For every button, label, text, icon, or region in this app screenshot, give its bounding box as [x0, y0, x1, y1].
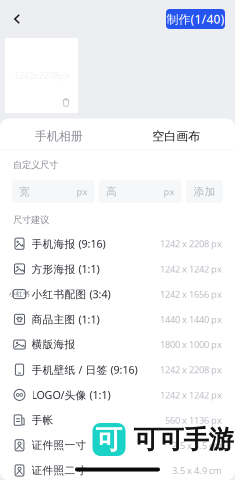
staticText: 商品主图 (1:1)	[31, 312, 99, 326]
staticText: px	[76, 185, 87, 198]
button[interactable]: 方形海报 (1:1)	[0, 256, 235, 281]
button[interactable]: LOGO/头像 (1:1)	[0, 382, 235, 407]
staticText: 1242x2208px	[13, 69, 69, 82]
button[interactable]: Back	[0, 7, 29, 31]
staticText: 手机海报 (9:16)	[31, 237, 105, 251]
staticText: px	[163, 185, 174, 198]
button[interactable]: 制作(1/40)	[166, 9, 225, 29]
staticText: 尺寸建议	[13, 214, 49, 226]
button[interactable]: 证件照二寸	[0, 458, 235, 480]
button[interactable]: 商品主图 (1:1)	[0, 307, 235, 332]
staticText: 自定义尺寸	[13, 159, 58, 171]
staticText: 空白画布	[152, 129, 200, 144]
staticText: 手帐	[31, 413, 53, 427]
staticText: 添加	[193, 185, 215, 198]
staticText: 横版海报	[31, 338, 75, 351]
button[interactable]: 手机相册	[0, 118, 117, 149]
button[interactable]: 添加	[186, 180, 223, 203]
button[interactable]: 空白画布	[117, 118, 235, 149]
staticText: 1242 x 1242 px	[160, 263, 222, 275]
button[interactable]: 证件照一寸	[0, 433, 235, 458]
button[interactable]: 手机海报 (9:16)	[0, 231, 235, 256]
staticText: 手机壁纸 / 日签 (9:16)	[31, 363, 137, 377]
staticText: 1440 x 1440 px	[160, 313, 222, 325]
button[interactable]: 高	[99, 180, 181, 203]
staticText: 证件照一寸	[31, 439, 86, 452]
staticText: 宽	[19, 185, 30, 198]
staticText: 可可手游	[133, 424, 233, 455]
button[interactable]: 宽	[12, 180, 94, 203]
staticText: 手机相册	[35, 129, 83, 144]
button[interactable]: 手帐	[0, 407, 235, 433]
staticText: 1800 x 1000 px	[160, 338, 222, 351]
button[interactable]: 小红书	[0, 281, 235, 307]
staticText: 证件照二寸	[31, 464, 86, 477]
button[interactable]: 手机壁纸 / 日签 (9:16)	[0, 357, 235, 382]
staticText: 3.5 x 4.9 cm	[172, 464, 222, 477]
staticText: 小红书配图 (3:4)	[31, 287, 110, 301]
staticText: 制作(1/40)	[166, 11, 224, 27]
staticText: 1242 x 2208 px	[160, 237, 222, 250]
staticText: 1242 x 1656 px	[160, 288, 222, 300]
staticText: LOGO/头像 (1:1)	[31, 388, 110, 402]
staticText: 高	[106, 185, 117, 198]
staticText: 1242 x 2208 px	[160, 363, 222, 376]
staticText: 2.5 x 3.5 cm	[172, 439, 222, 451]
staticText: 560 x 1136 px	[165, 414, 222, 426]
button[interactable]: 横版海报	[0, 332, 235, 357]
staticText: 1242 x 1242 px	[160, 389, 222, 401]
staticText: 小红书	[9, 290, 30, 298]
staticText: 方形海报 (1:1)	[31, 262, 99, 276]
staticText: 可	[95, 423, 122, 456]
